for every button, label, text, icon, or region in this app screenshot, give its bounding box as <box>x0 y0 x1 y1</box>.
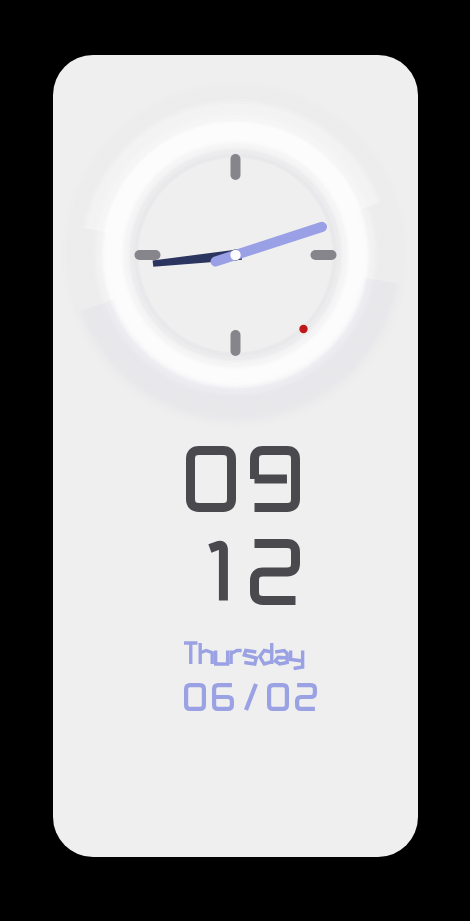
button[interactable]: Analog clock <box>115 135 356 376</box>
button[interactable] <box>163 635 313 715</box>
button[interactable]: Analog clock <box>53 55 418 857</box>
button[interactable] <box>181 441 297 609</box>
